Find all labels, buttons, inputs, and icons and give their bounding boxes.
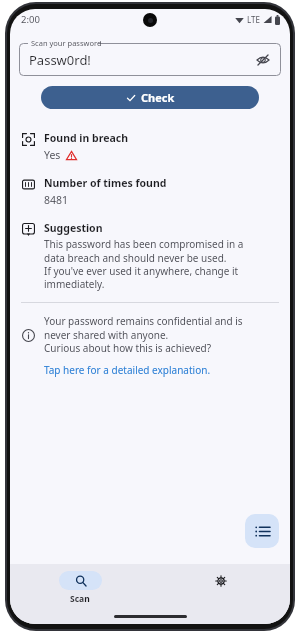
staticText: Tap here for a detailed explanation. bbox=[44, 363, 211, 377]
staticText: This password has been compromised in a … bbox=[44, 237, 244, 291]
staticText: 8481 bbox=[44, 193, 69, 207]
staticText: Scan bbox=[70, 593, 90, 605]
staticText: Your password remains confidential and i… bbox=[44, 314, 243, 355]
staticText: Found in breach bbox=[44, 131, 128, 145]
button[interactable]: Check bbox=[41, 86, 259, 109]
staticText: Suggestion bbox=[44, 221, 103, 235]
button[interactable]: Tap here for a detailed explanation. bbox=[44, 363, 211, 377]
button[interactable]: Scan bbox=[10, 571, 150, 605]
staticText: Passw0rd! bbox=[29, 51, 253, 69]
button[interactable]: Show history list bbox=[245, 514, 279, 548]
staticText: Scan your password bbox=[31, 38, 102, 48]
staticText: 2:00 bbox=[21, 13, 40, 26]
staticText: Yes bbox=[44, 148, 61, 162]
staticText: LTE bbox=[247, 14, 260, 25]
staticText: Number of times found bbox=[44, 176, 167, 190]
button[interactable]: Hide password bbox=[253, 50, 273, 70]
staticText: Check bbox=[141, 90, 175, 105]
button[interactable]: Settings bbox=[150, 571, 290, 590]
